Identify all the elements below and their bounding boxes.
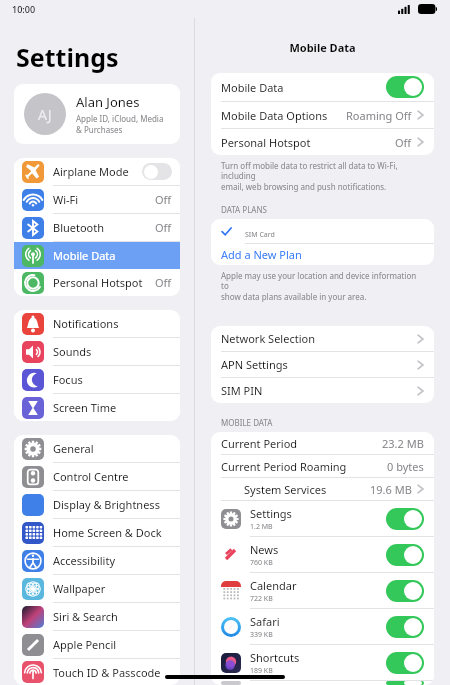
button[interactable]: General [14,435,180,462]
staticText: Notifications [53,316,172,331]
staticText: Control Centre [53,469,172,484]
staticText: SIM PIN [221,383,417,398]
button[interactable]: On [386,508,424,530]
button[interactable]: Personal Hotspot [211,129,434,155]
button[interactable]: On [386,544,424,566]
staticText: Calendar [250,578,297,593]
staticText: 760 KB [250,558,273,568]
button[interactable]: Selected [211,219,434,243]
staticText: Add a New Plan [221,247,302,262]
staticText: Home Screen & Dock [53,525,172,540]
staticText: Off [155,192,172,207]
button[interactable]: SIM PIN [211,378,434,403]
staticText: DATA PLANS [221,204,267,215]
staticText: 189 KB [250,666,273,676]
button[interactable]: News [211,537,434,572]
staticText: Personal Hotspot [53,275,155,290]
button[interactable]: Settings [211,501,434,536]
button[interactable]: Screen Time [14,394,180,421]
staticText: Turn off mobile data to restrict all dat… [221,160,424,181]
staticText: Bluetooth [53,220,155,235]
button[interactable]: Focus [14,366,180,393]
button[interactable]: Mobile Data [211,73,434,101]
button[interactable]: Add a New Plan [211,244,434,265]
staticText: Airplane Mode [53,164,142,179]
staticText: 339 KB [250,630,273,640]
button[interactable]: On [386,580,424,602]
staticText: Network Selection [221,331,417,346]
staticText: Off [395,135,412,150]
staticText: Screen Time [53,400,172,415]
staticText: Current Period Roaming [221,459,387,474]
button[interactable]: Control Centre [14,463,180,490]
button[interactable]: On [386,681,424,685]
staticText: Wi-Fi [53,192,155,207]
button[interactable]: Current Period Roaming [211,455,434,477]
button[interactable]: Wi-Fi [14,186,180,213]
button[interactable]: Mobile Data [14,242,180,269]
button[interactable]: Contacts [211,681,434,685]
button[interactable]: Sounds [14,338,180,365]
staticText: Mobile Data [221,80,386,95]
staticText: Roaming Off [346,108,412,123]
button[interactable]: On [386,76,424,98]
button[interactable]: Current Period [211,432,434,454]
staticText: Shortcuts [250,650,300,665]
staticText: Display & Brightness [53,497,172,512]
button[interactable]: On [386,652,424,674]
button[interactable]: Touch ID & Passcode [14,659,180,685]
staticText: Personal Hotspot [221,135,395,150]
staticText: show data plans available in your area. [221,291,367,302]
button[interactable]: AJ [14,84,180,144]
button[interactable]: Notifications [14,310,180,337]
staticText: email, web browsing and push notificatio… [221,181,387,192]
button[interactable]: Accessibility [14,547,180,574]
button[interactable]: Safari [211,609,434,644]
staticText: Siri & Search [53,609,172,624]
staticText: News [250,542,279,557]
button[interactable]: Personal Hotspot [14,269,180,296]
button[interactable]: Apple Pencil [14,631,180,658]
button[interactable]: Wallpaper [14,575,180,602]
staticText: General [53,441,172,456]
button[interactable]: System Services [211,478,434,500]
staticText: Accessibility [53,553,172,568]
button[interactable]: Home Screen & Dock [14,519,180,546]
staticText: 722 KB [250,594,273,604]
button[interactable]: Mobile Data Options [211,102,434,128]
button[interactable]: Airplane Mode toggle [142,163,172,180]
button[interactable]: Siri & Search [14,603,180,630]
staticText: 19.6 MB [370,482,412,497]
staticText: SIM Card [245,230,275,240]
staticText: & Purchases [76,124,123,135]
staticText: APN Settings [221,357,417,372]
button[interactable]: Bluetooth [14,214,180,241]
staticText: Current Period [221,436,382,451]
staticText: 0 bytes [387,459,424,474]
staticText: Off [155,220,172,235]
staticText: Off [155,275,172,290]
staticText: Mobile Data Options [221,108,346,123]
button[interactable]: Network Selection [211,326,434,351]
staticText: 1.2 MB [250,522,273,532]
other: Selected [221,226,232,237]
staticText: Touch ID & Passcode [53,665,172,680]
staticText: Apple ID, iCloud, Media [76,113,164,124]
button[interactable]: Airplane Mode [14,158,180,185]
staticText: Alan Jones [76,93,140,111]
staticText: Wallpaper [53,581,172,596]
button[interactable]: Display & Brightness [14,491,180,518]
staticText: 10:00 [12,3,36,15]
staticText: Safari [250,614,280,629]
staticText: Focus [53,372,172,387]
button[interactable]: APN Settings [211,352,434,377]
button[interactable]: Calendar [211,573,434,608]
button[interactable]: Shortcuts [211,645,434,680]
staticText: Mobile Data [195,40,450,55]
staticText: Apple Pencil [53,637,172,652]
staticText: Mobile Data [53,248,172,263]
button[interactable]: On [386,616,424,638]
staticText: Apple may use your location and device i… [221,270,424,291]
staticText: Sounds [53,344,172,359]
